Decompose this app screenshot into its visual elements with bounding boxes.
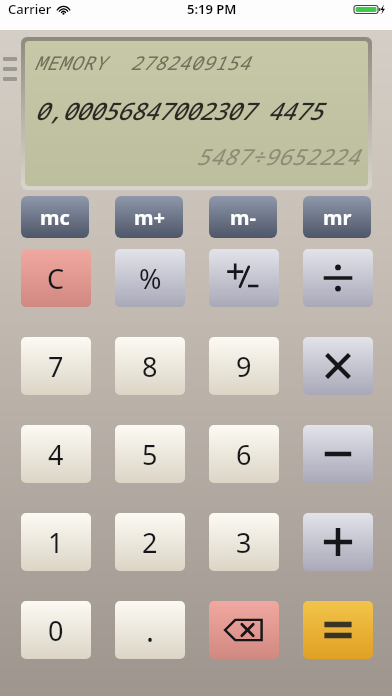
staticText: 6 — [236, 436, 252, 473]
button[interactable]: 0 — [21, 601, 91, 659]
button[interactable]: m- — [209, 196, 277, 238]
staticText: 1 — [48, 524, 64, 561]
staticText: . — [146, 610, 155, 651]
button[interactable]: 7 — [21, 337, 91, 395]
button[interactable]: 2 — [115, 513, 185, 571]
staticText: 7 — [48, 348, 64, 385]
button[interactable]: Backspace — [209, 601, 279, 659]
button[interactable]: 1 — [21, 513, 91, 571]
button[interactable]: 4 — [21, 425, 91, 483]
button[interactable]: Equals — [303, 601, 373, 659]
staticText: 3 — [236, 524, 252, 561]
staticText: 8 — [142, 348, 158, 385]
button[interactable]: mr — [303, 196, 371, 238]
button[interactable]: 5 — [115, 425, 185, 483]
button[interactable]: . — [115, 601, 185, 659]
staticText: 4 — [48, 436, 64, 473]
button[interactable]: m+ — [115, 196, 183, 238]
staticText: 5 — [142, 436, 158, 473]
button[interactable]: Plus — [303, 513, 373, 571]
button[interactable]: Multiply — [303, 337, 373, 395]
button[interactable]: 8 — [115, 337, 185, 395]
staticText: 0 — [48, 612, 64, 649]
staticText: 9 — [236, 348, 252, 385]
button[interactable] — [209, 249, 279, 307]
staticText: 5487÷9652224 — [34, 141, 359, 171]
staticText: mr — [323, 204, 352, 231]
staticText: 2 — [142, 524, 158, 561]
staticText: m- — [230, 204, 256, 231]
staticText: 5:19 PM — [187, 0, 237, 18]
staticText: mc — [40, 204, 70, 231]
staticText: Carrier — [8, 0, 52, 18]
button[interactable]: 9 — [209, 337, 279, 395]
staticText: m+ — [134, 204, 165, 231]
button[interactable]: mc — [21, 196, 89, 238]
staticText: 0,00056847002307 4475 — [34, 94, 359, 127]
button[interactable]: Minus — [303, 425, 373, 483]
staticText: % — [139, 260, 162, 297]
button[interactable]: 6 — [209, 425, 279, 483]
button[interactable]: C — [21, 249, 91, 307]
staticText: C — [47, 260, 65, 297]
staticText: MEMORY 2782409154 — [34, 50, 359, 76]
button[interactable]: Divide — [303, 249, 373, 307]
button[interactable]: 3 — [209, 513, 279, 571]
button[interactable]: % — [115, 249, 185, 307]
